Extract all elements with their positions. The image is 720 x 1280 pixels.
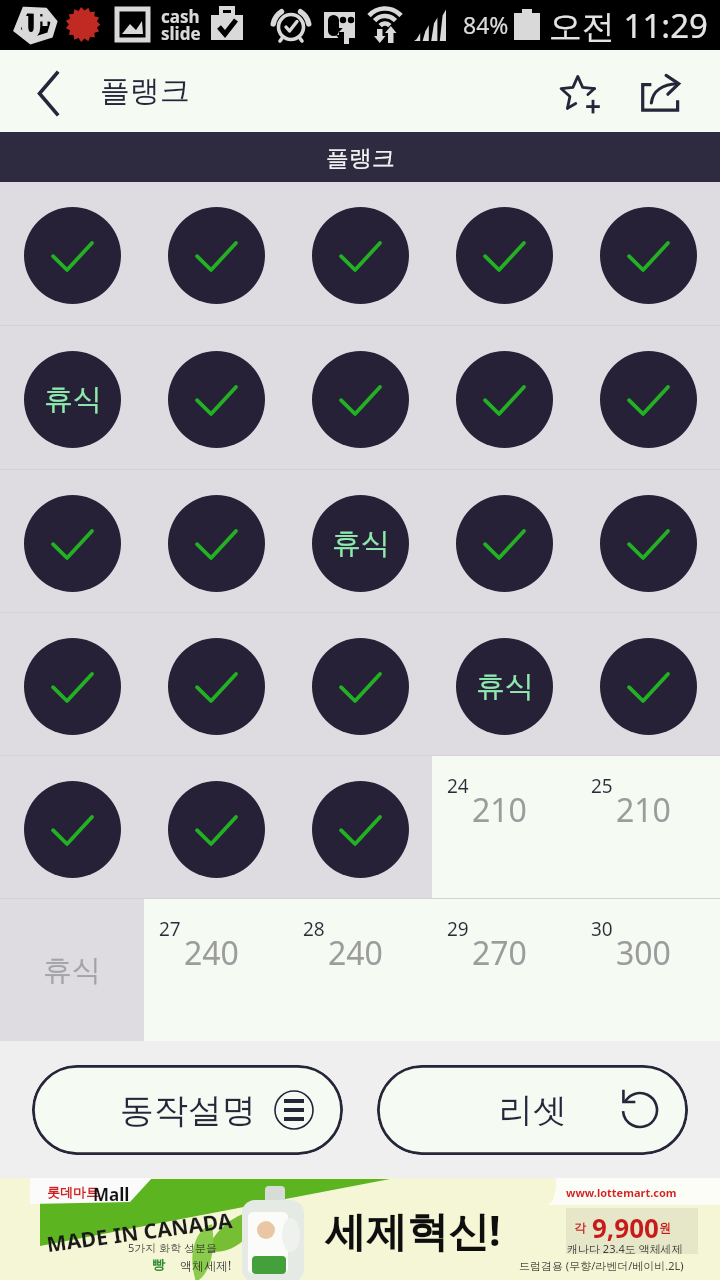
staticText: 5가지 화학 성분을 <box>128 1240 218 1255</box>
button[interactable] <box>144 326 288 469</box>
button[interactable]: Back <box>0 50 92 134</box>
button[interactable]: Share <box>622 55 696 129</box>
staticText: Mall <box>93 1183 130 1206</box>
staticText: 300 <box>616 931 671 975</box>
staticText: cash slide <box>161 5 201 45</box>
button[interactable]: 동작설명 <box>32 1065 343 1155</box>
button[interactable] <box>0 613 144 755</box>
button[interactable]: 30 <box>576 899 720 1041</box>
button[interactable]: 28 <box>288 899 432 1041</box>
button[interactable] <box>0 756 144 898</box>
button[interactable]: 리셋 <box>377 1065 688 1155</box>
button[interactable] <box>144 470 288 612</box>
button[interactable] <box>288 613 432 755</box>
button[interactable] <box>432 182 576 325</box>
staticText: 240 <box>184 931 239 975</box>
button[interactable]: 25 <box>576 756 720 898</box>
staticText: 원 <box>659 1220 671 1235</box>
staticText: 각 <box>574 1220 586 1235</box>
button[interactable] <box>0 470 144 612</box>
staticText: 리셋 <box>499 1089 567 1132</box>
button[interactable] <box>288 756 432 898</box>
button[interactable] <box>576 470 720 612</box>
staticText: 210 <box>616 788 671 832</box>
button[interactable]: 24 <box>432 756 576 898</box>
staticText: 240 <box>328 931 383 975</box>
staticText: 동작설명 <box>120 1089 256 1132</box>
staticText: 플랭크 <box>326 144 395 173</box>
button[interactable] <box>288 326 432 469</box>
button[interactable] <box>576 326 720 469</box>
staticText: 휴식 <box>43 952 101 989</box>
staticText: 210 <box>472 788 527 832</box>
staticText: 30 <box>591 916 613 942</box>
staticText: 캐나다 23.4도 액체세제 <box>567 1241 683 1256</box>
button[interactable]: 휴식 <box>0 326 144 469</box>
button[interactable] <box>144 756 288 898</box>
button[interactable] <box>144 613 288 755</box>
staticText: 휴식 <box>44 381 102 418</box>
button[interactable]: 29 <box>432 899 576 1041</box>
button[interactable]: 27 <box>144 899 288 1041</box>
button[interactable] <box>288 182 432 325</box>
button[interactable]: 휴식 <box>288 470 432 612</box>
staticText: 28 <box>303 916 325 942</box>
button[interactable] <box>0 182 144 325</box>
staticText: 84% <box>463 9 509 40</box>
button[interactable]: 휴식 <box>0 899 144 1041</box>
button[interactable] <box>576 613 720 755</box>
button[interactable] <box>432 470 576 612</box>
staticText: 24 <box>447 773 469 799</box>
staticText: 플랭크 <box>100 72 190 110</box>
staticText: 세제혁신! <box>325 1202 501 1258</box>
staticText: 29 <box>447 916 469 942</box>
button[interactable] <box>432 326 576 469</box>
staticText: 빵 <box>152 1256 165 1272</box>
staticText: 9,900 <box>592 1210 659 1245</box>
staticText: 롯데마트 <box>47 1184 99 1200</box>
staticText: 휴식 <box>476 668 534 705</box>
staticText: 270 <box>472 931 527 975</box>
staticText: MADE IN CANADA <box>45 1206 234 1259</box>
button[interactable]: Add to favourites <box>544 55 618 129</box>
button[interactable]: 휴식 <box>432 613 576 755</box>
staticText: 27 <box>159 916 181 942</box>
button[interactable] <box>144 182 288 325</box>
staticText: 드럼겸용 (무향/라벤더/베이비.2L) <box>519 1258 684 1273</box>
staticText: 25 <box>591 773 613 799</box>
staticText: 액체세제! <box>180 1257 232 1273</box>
button[interactable] <box>576 182 720 325</box>
staticText: www.lottemart.com <box>566 1185 677 1200</box>
staticText: 휴식 <box>332 525 390 562</box>
staticText: 오전 11:29 <box>549 3 708 48</box>
